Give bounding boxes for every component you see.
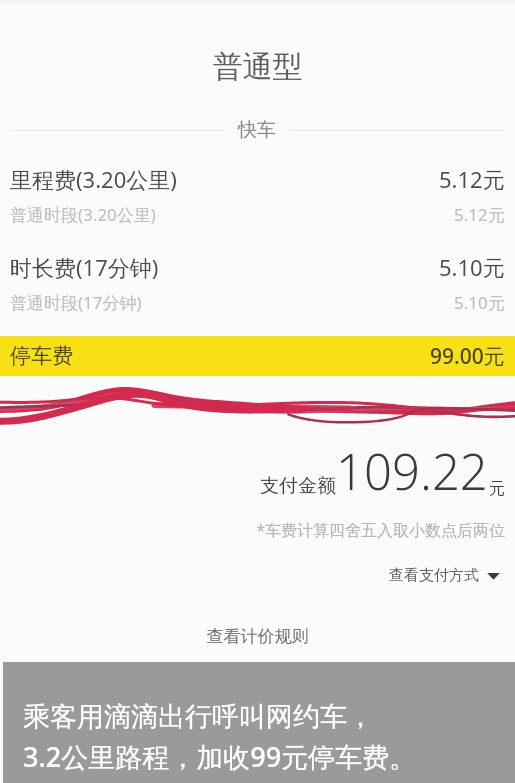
staticText: 普通时段(17分钟) <box>10 291 142 314</box>
button[interactable]: 停车费 <box>0 336 515 376</box>
staticText: 里程费(3.20公里) <box>10 164 177 194</box>
button[interactable]: 查看支付方式 <box>385 563 505 588</box>
staticText: 支付金额 <box>260 474 336 498</box>
staticText: *车费计算四舍五入取小数点后两位 <box>0 519 505 541</box>
staticText: 普通型 <box>0 48 515 86</box>
button[interactable]: 里程费(3.20公里) <box>0 164 515 226</box>
staticText: 快车 <box>238 118 276 142</box>
button[interactable]: 查看计价规则 <box>0 626 515 647</box>
staticText: 查看支付方式 <box>389 566 479 585</box>
staticText: 3.2公里路程，加收99元停车费。 <box>23 738 417 775</box>
staticText: 5.10元 <box>454 291 505 314</box>
staticText: 停车费 <box>10 343 73 369</box>
staticText: 5.10元 <box>439 252 505 282</box>
button[interactable]: 时长费(17分钟) <box>0 252 515 314</box>
staticText: 时长费(17分钟) <box>10 252 159 282</box>
staticText: 元 <box>489 479 505 499</box>
staticText: 99.00元 <box>430 342 505 371</box>
other: Expand payment method <box>486 568 501 583</box>
staticText: 普通时段(3.20公里) <box>10 203 156 226</box>
staticText: 109.22 <box>336 438 488 505</box>
staticText: 5.12元 <box>439 164 505 194</box>
staticText: 乘客用滴滴出行呼叫网约车， <box>23 700 374 734</box>
staticText: 5.12元 <box>454 203 505 226</box>
